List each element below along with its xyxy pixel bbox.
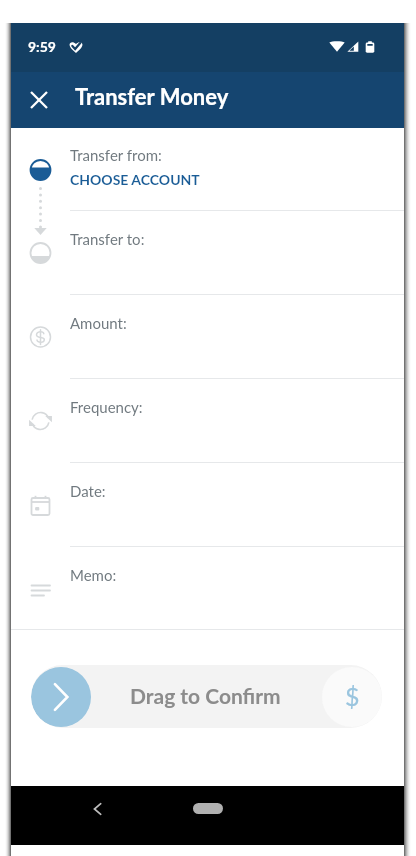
staticText: Frequency: <box>70 398 143 416</box>
staticText: Amount: <box>70 314 127 332</box>
button[interactable]: Date: <box>11 462 404 546</box>
staticText: Transfer to: <box>70 230 145 248</box>
button[interactable]: Close <box>11 72 66 128</box>
staticText: Transfer Money <box>75 83 229 109</box>
button[interactable]: Amount: <box>11 294 404 378</box>
button[interactable]: Home <box>178 786 238 845</box>
staticText: 9:59 <box>28 38 56 55</box>
button[interactable]: Memo: <box>11 546 404 629</box>
staticText: CHOOSE ACCOUNT <box>70 171 200 188</box>
button[interactable]: Confirm transfer <box>31 667 91 727</box>
staticText: Transfer from: <box>70 146 162 164</box>
staticText: Date: <box>70 482 106 500</box>
staticText: Drag to Confirm <box>130 683 281 708</box>
button[interactable]: Drag to Confirm <box>31 665 382 728</box>
button[interactable]: Frequency: <box>11 378 404 462</box>
staticText: $ <box>345 681 360 711</box>
button[interactable]: Back <box>68 786 126 845</box>
staticText: Memo: <box>70 566 117 584</box>
button[interactable]: Transfer from: <box>11 128 404 210</box>
button[interactable]: Transfer to: <box>11 210 404 294</box>
